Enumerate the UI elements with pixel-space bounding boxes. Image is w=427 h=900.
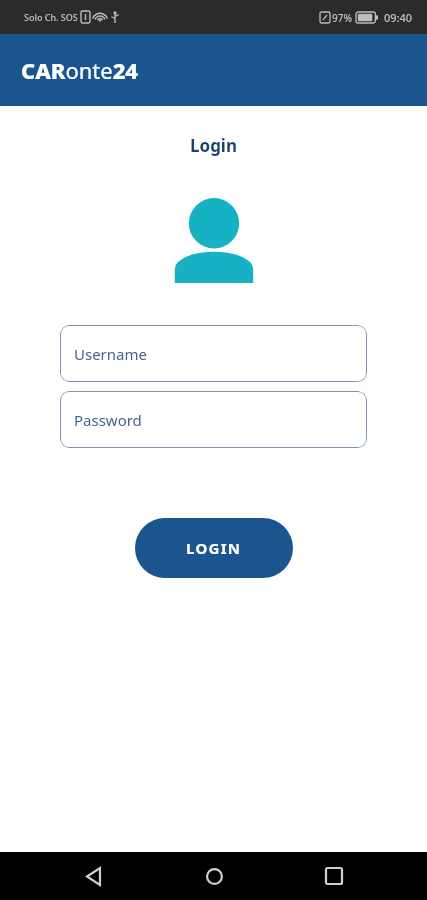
button[interactable]: Back — [65, 852, 121, 900]
staticText: CARonte24 — [21, 55, 139, 85]
button[interactable]: Username — [60, 325, 367, 382]
button[interactable]: Recent apps — [306, 852, 362, 900]
staticText: 97% — [332, 11, 352, 25]
staticText: LOGIN — [186, 538, 242, 558]
staticText: Username — [74, 344, 147, 364]
staticText: Solo Ch. SOS — [24, 11, 78, 23]
staticText: Password — [74, 410, 142, 430]
staticText: 09:40 — [384, 10, 413, 25]
staticText: Login — [190, 134, 238, 157]
button[interactable]: Password — [60, 391, 367, 448]
button[interactable]: Home — [186, 852, 242, 900]
button[interactable]: LOGIN — [135, 518, 293, 578]
